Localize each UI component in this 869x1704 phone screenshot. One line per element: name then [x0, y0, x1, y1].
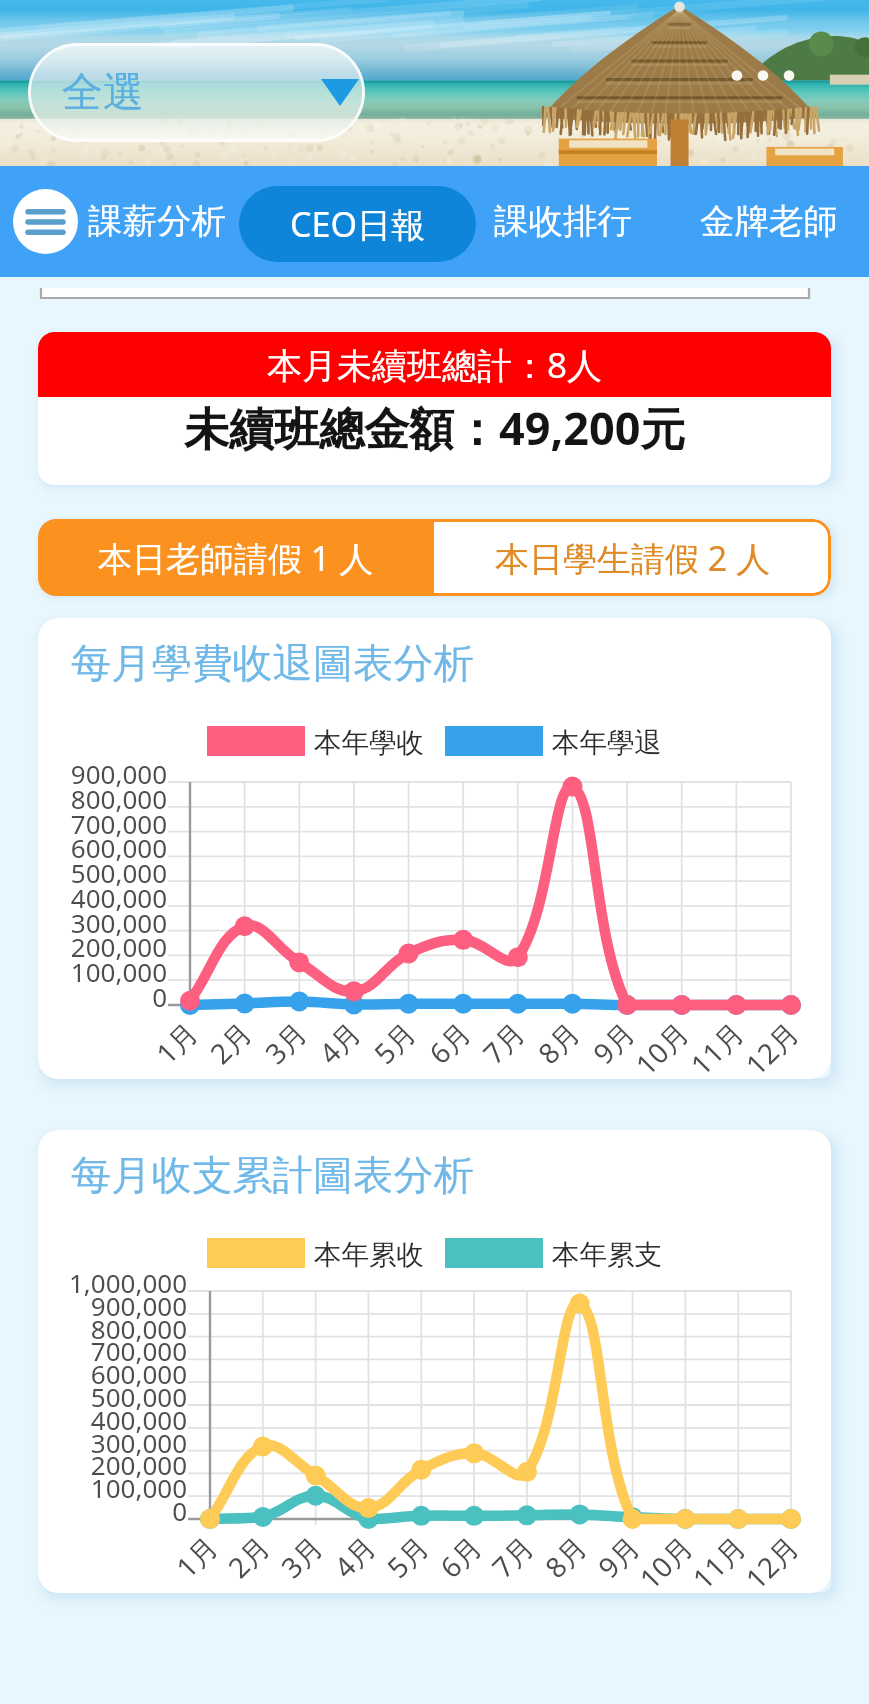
staticText: 900,000 — [90, 1288, 187, 1323]
staticText: 0 — [172, 1493, 187, 1528]
staticText: 11月 — [684, 1527, 754, 1593]
staticText: 6月 — [420, 1013, 479, 1072]
button[interactable]: CEO日報 — [239, 186, 476, 262]
button[interactable]: 本月未續班總計：8人 — [38, 332, 831, 485]
button[interactable]: 全選 — [28, 43, 365, 142]
staticText: 本年累收 — [314, 1238, 424, 1268]
staticText: 8月 — [536, 1527, 595, 1586]
staticText: 400,000 — [90, 1402, 187, 1437]
button[interactable]: 本日老師請假 1 人 — [38, 519, 434, 596]
staticText: 700,000 — [70, 806, 167, 841]
staticText: 10月 — [627, 1013, 697, 1079]
staticText: 1月 — [167, 1527, 226, 1586]
staticText: 本日學生請假 2 人 — [495, 535, 771, 581]
staticText: 每月學費收退圖表分析 — [71, 638, 474, 689]
button[interactable]: 金牌老師 — [700, 191, 838, 251]
staticText: 5月 — [378, 1527, 437, 1586]
staticText: 3月 — [272, 1527, 331, 1586]
staticText: 每月收支累計圖表分析 — [71, 1150, 474, 1201]
staticText: 8月 — [529, 1013, 588, 1072]
staticText: 300,000 — [70, 905, 167, 940]
button[interactable]: 本日學生請假 2 人 — [434, 519, 831, 596]
staticText: 4月 — [325, 1527, 384, 1586]
staticText: 6月 — [431, 1527, 490, 1586]
staticText: 500,000 — [70, 855, 167, 890]
staticText: 1,000,000 — [68, 1265, 187, 1300]
button[interactable]: 課薪分析 — [88, 191, 226, 251]
staticText: 12月 — [737, 1527, 807, 1593]
staticText: 課收排行 — [494, 200, 632, 243]
staticText: 400,000 — [70, 880, 167, 915]
staticText: 7月 — [483, 1527, 542, 1586]
button[interactable]: Menu — [13, 189, 78, 254]
staticText: 9月 — [589, 1527, 648, 1586]
staticText: 3月 — [256, 1013, 315, 1072]
staticText: 4月 — [310, 1013, 369, 1072]
staticText: 300,000 — [90, 1425, 187, 1460]
staticText: 700,000 — [90, 1333, 187, 1368]
staticText: 100,000 — [90, 1470, 187, 1505]
button[interactable]: 課收排行 — [494, 191, 632, 251]
staticText: 11月 — [682, 1013, 752, 1079]
staticText: 200,000 — [90, 1447, 187, 1482]
staticText: 600,000 — [90, 1356, 187, 1391]
staticText: 未續班總金額：49,200元 — [184, 397, 686, 458]
staticText: 9月 — [584, 1013, 643, 1072]
staticText: 本月未續班總計：8人 — [267, 341, 603, 389]
staticText: 100,000 — [70, 954, 167, 989]
staticText: 本日老師請假 1 人 — [98, 535, 374, 581]
staticText: 600,000 — [70, 830, 167, 865]
staticText: 金牌老師 — [700, 200, 838, 243]
staticText: 本年累支 — [552, 1238, 662, 1268]
staticText: 800,000 — [90, 1311, 187, 1346]
staticText: 5月 — [365, 1013, 424, 1072]
staticText: 800,000 — [70, 781, 167, 816]
staticText: 本年學退 — [552, 726, 662, 756]
staticText: 2月 — [201, 1013, 260, 1072]
staticText: 1月 — [147, 1013, 206, 1072]
staticText: 2月 — [219, 1527, 278, 1586]
staticText: CEO日報 — [290, 201, 425, 247]
staticText: 12月 — [737, 1013, 807, 1079]
staticText: 500,000 — [90, 1379, 187, 1414]
staticText: 課薪分析 — [88, 200, 226, 243]
staticText: 10月 — [631, 1527, 701, 1593]
staticText: 200,000 — [70, 929, 167, 964]
staticText: 全選 — [62, 67, 144, 119]
staticText: 7月 — [474, 1013, 533, 1072]
staticText: 本年學收 — [314, 726, 424, 756]
staticText: 0 — [152, 979, 167, 1014]
staticText: 900,000 — [70, 756, 167, 791]
